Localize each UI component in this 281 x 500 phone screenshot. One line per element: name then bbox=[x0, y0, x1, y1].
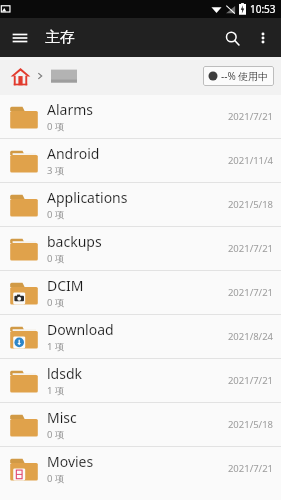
staticText: 2021/5/18 bbox=[227, 198, 273, 211]
staticText: 2021/7/21 bbox=[227, 374, 273, 387]
staticText: 3 项 bbox=[47, 164, 65, 177]
button[interactable]: DCIM bbox=[0, 271, 281, 314]
button[interactable]: Alarms bbox=[0, 95, 281, 138]
staticText: 2021/11/4 bbox=[227, 154, 273, 167]
button[interactable]: Misc bbox=[0, 403, 281, 446]
button[interactable]: Download bbox=[0, 315, 281, 358]
staticText: 0 项 bbox=[47, 120, 65, 133]
staticText: 2021/7/21 bbox=[227, 286, 273, 299]
staticText: 0 项 bbox=[47, 208, 65, 221]
button[interactable]: Search bbox=[216, 22, 248, 54]
button[interactable]: backups bbox=[0, 227, 281, 270]
button[interactable]: Home bbox=[8, 64, 32, 88]
staticText: 2021/7/21 bbox=[227, 110, 273, 123]
staticText: Applications bbox=[47, 188, 128, 207]
staticText: Movies bbox=[47, 452, 94, 471]
button[interactable]: Android bbox=[0, 139, 281, 182]
staticText: Download bbox=[47, 320, 114, 339]
staticText: 2021/7/21 bbox=[227, 462, 273, 475]
staticText: --% 使用中 bbox=[221, 69, 269, 83]
staticText: 1 项 bbox=[47, 384, 65, 397]
staticText: 2021/5/18 bbox=[227, 418, 273, 431]
button[interactable]: Internal storage bbox=[49, 64, 79, 88]
button[interactable]: Movies bbox=[0, 447, 281, 490]
staticText: Misc bbox=[47, 408, 77, 427]
staticText: 0 项 bbox=[47, 252, 65, 265]
staticText: 2021/8/24 bbox=[227, 330, 273, 343]
staticText: 10:53 bbox=[250, 2, 276, 16]
staticText: 1 项 bbox=[47, 340, 65, 353]
staticText: Alarms bbox=[47, 100, 93, 119]
button[interactable]: Applications bbox=[0, 183, 281, 226]
button[interactable]: ldsdk bbox=[0, 359, 281, 402]
staticText: 0 项 bbox=[47, 428, 65, 441]
staticText: 2021/7/21 bbox=[227, 242, 273, 255]
button[interactable]: Open navigation drawer bbox=[5, 23, 35, 53]
button[interactable]: --% 使用中 bbox=[203, 66, 274, 86]
staticText: 0 项 bbox=[47, 296, 65, 309]
staticText: 主存 bbox=[45, 28, 75, 47]
staticText: ldsdk bbox=[47, 364, 83, 383]
staticText: Android bbox=[47, 144, 100, 163]
staticText: 0 项 bbox=[47, 472, 65, 485]
button[interactable]: More options bbox=[248, 23, 278, 53]
staticText: DCIM bbox=[47, 276, 84, 295]
staticText: backups bbox=[47, 232, 102, 251]
